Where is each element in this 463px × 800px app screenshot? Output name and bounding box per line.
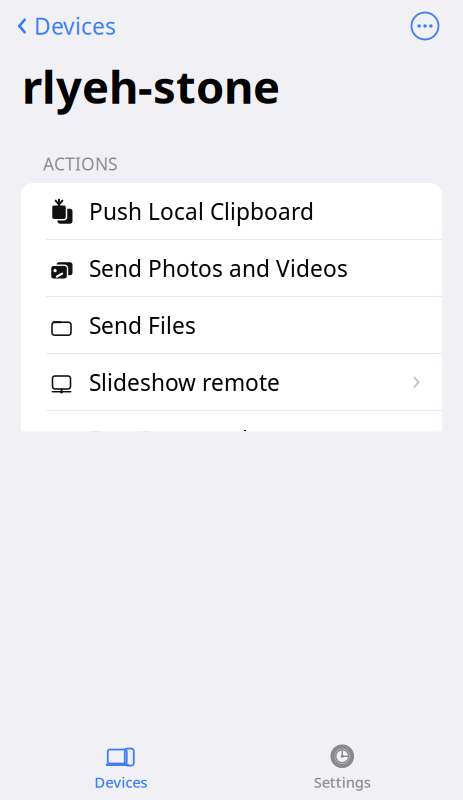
staticText: Send Files bbox=[89, 310, 196, 340]
button[interactable]: Settings bbox=[231, 738, 453, 798]
button[interactable]: Send Files bbox=[21, 297, 442, 353]
button[interactable]: Devices bbox=[0, 5, 116, 47]
staticText: Settings bbox=[314, 772, 371, 792]
staticText: rlyeh-stone bbox=[22, 56, 280, 116]
staticText: Run Command bbox=[89, 424, 248, 454]
staticText: Push Local Clipboard bbox=[89, 196, 314, 226]
button[interactable]: Push Local Clipboard bbox=[21, 183, 442, 239]
button[interactable]: Run Command bbox=[21, 411, 442, 467]
staticText: Slideshow remote bbox=[89, 367, 280, 397]
staticText: Devices bbox=[34, 11, 116, 41]
button[interactable]: Slideshow remote bbox=[21, 354, 442, 410]
staticText: Send Photos and Videos bbox=[89, 253, 348, 283]
button[interactable]: Send Photos and Videos bbox=[21, 240, 442, 296]
staticText: ACTIONS bbox=[43, 152, 118, 175]
button[interactable]: More options bbox=[405, 6, 463, 46]
button[interactable]: Devices bbox=[10, 738, 231, 798]
staticText: Devices bbox=[94, 772, 147, 792]
